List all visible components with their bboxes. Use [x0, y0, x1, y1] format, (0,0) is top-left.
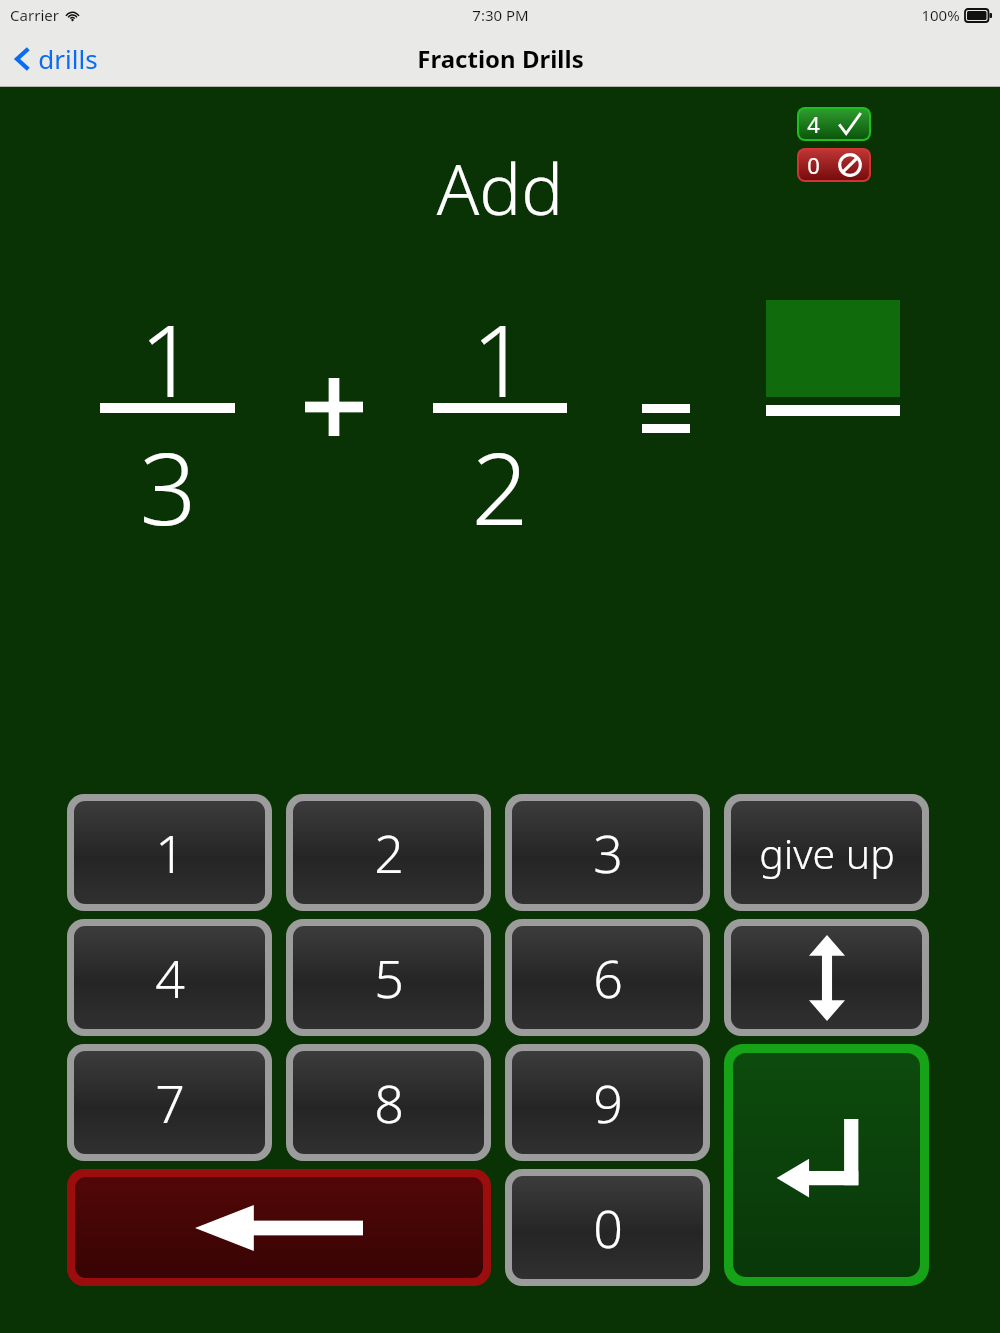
- staticText: 1: [471, 290, 529, 398]
- staticText: Fraction Drills: [417, 42, 584, 75]
- staticText: Carrier: [10, 5, 59, 25]
- staticText: drills: [38, 41, 98, 76]
- staticText: 3: [139, 418, 197, 526]
- staticText: give up: [759, 825, 895, 881]
- staticText: 7:30 PM: [472, 5, 529, 25]
- button[interactable]: 3: [512, 801, 703, 904]
- staticText: 4: [155, 942, 185, 1013]
- button[interactable]: 8: [293, 1051, 484, 1154]
- button[interactable]: 9: [512, 1051, 703, 1154]
- button[interactable]: 6: [512, 926, 703, 1029]
- staticText: 100%: [921, 5, 960, 25]
- staticText: Add: [0, 140, 1000, 235]
- staticText: 3: [593, 817, 623, 888]
- button[interactable]: 2: [293, 801, 484, 904]
- staticText: 0: [807, 150, 820, 180]
- button[interactable]: 1: [74, 801, 265, 904]
- staticText: 2: [471, 418, 529, 526]
- button[interactable]: Enter: [733, 1053, 920, 1277]
- staticText: 8: [374, 1067, 404, 1138]
- button[interactable]: give up: [731, 801, 922, 904]
- button[interactable]: Backspace: [75, 1177, 483, 1278]
- button[interactable]: Wrong answers: [799, 150, 869, 180]
- button[interactable]: 7: [74, 1051, 265, 1154]
- staticText: 1: [155, 817, 185, 888]
- staticText: 6: [593, 942, 623, 1013]
- staticText: 1: [139, 290, 197, 398]
- button[interactable]: Switch between numerator and denominator: [731, 926, 922, 1029]
- button[interactable]: 4: [74, 926, 265, 1029]
- button[interactable]: 0: [512, 1176, 703, 1279]
- staticText: 0: [593, 1192, 623, 1263]
- button[interactable]: drills: [0, 35, 114, 82]
- staticText: 2: [374, 817, 404, 888]
- staticText: 5: [374, 942, 404, 1013]
- staticText: 7: [155, 1067, 185, 1138]
- staticText: 9: [593, 1067, 623, 1138]
- staticText: 4: [807, 109, 820, 139]
- button[interactable]: Correct answers: [799, 109, 869, 139]
- button[interactable]: 5: [293, 926, 484, 1029]
